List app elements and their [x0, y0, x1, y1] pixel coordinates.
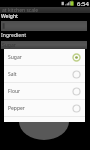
staticText: Salt — [8, 71, 17, 78]
button[interactable]: Sugar — [1, 41, 87, 49]
other: Select Flour — [72, 87, 81, 96]
staticText: Ingredient — [1, 32, 27, 39]
staticText: at kitchen scale — [2, 7, 39, 13]
staticText: Flour — [8, 88, 21, 95]
staticText: 6:54 — [77, 0, 89, 7]
staticText: Sugar — [2, 42, 16, 49]
button[interactable]: Salt — [4, 66, 85, 82]
button[interactable]: Flour — [4, 83, 85, 99]
other: Select Sugar — [72, 53, 81, 62]
other: Select Pepper — [72, 104, 81, 113]
other: Select Salt — [72, 70, 81, 79]
staticText: Pepper — [8, 105, 25, 112]
staticText: Weight — [1, 13, 18, 20]
button[interactable]: Pepper — [4, 100, 85, 116]
staticText: Sugar — [8, 54, 22, 61]
button[interactable]: at kitchen scale — [0, 7, 90, 13]
button[interactable]: Sugar — [4, 49, 85, 65]
button[interactable] — [1, 21, 87, 31]
